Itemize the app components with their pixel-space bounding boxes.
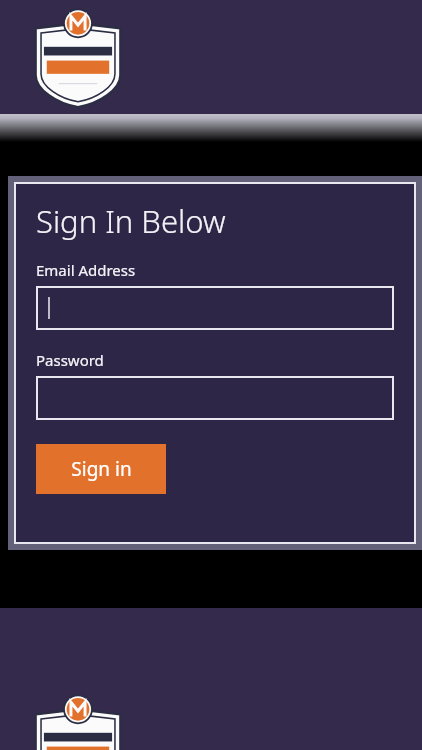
other: Midland Trust logo [30, 6, 126, 108]
staticText: Password [36, 350, 104, 370]
other: Midland Trust logo [30, 692, 126, 750]
staticText: Sign In Below [36, 200, 226, 242]
button[interactable]: Sign in [36, 444, 166, 494]
staticText: Sign in [71, 456, 132, 482]
button[interactable] [38, 288, 392, 328]
staticText: Email Address [36, 260, 136, 280]
